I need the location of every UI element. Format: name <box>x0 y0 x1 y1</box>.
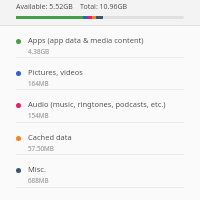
staticText: Available: 5.52GB <box>16 2 73 12</box>
button[interactable]: Pictures, videos <box>0 58 200 90</box>
staticText: Misc. <box>28 164 46 174</box>
staticText: 57.50MB <box>28 144 54 153</box>
staticText: 4.38GB <box>28 47 50 56</box>
button[interactable]: Cached data <box>0 123 200 155</box>
staticText: Pictures, videos <box>28 67 83 77</box>
staticText: Total: 10.96GB <box>80 2 128 12</box>
staticText: 154MB <box>28 111 49 120</box>
staticText: Audio (music, ringtones, podcasts, etc.) <box>28 99 166 109</box>
button[interactable]: Misc. <box>0 155 200 188</box>
staticText: 688MB <box>28 176 49 185</box>
button[interactable]: Audio (music, ringtones, podcasts, etc.) <box>0 90 200 123</box>
staticText: Cached data <box>28 132 72 142</box>
staticText: Apps (app data & media content) <box>28 35 144 45</box>
button[interactable]: Apps (app data & media content) <box>0 26 200 58</box>
staticText: 164MB <box>28 79 49 88</box>
